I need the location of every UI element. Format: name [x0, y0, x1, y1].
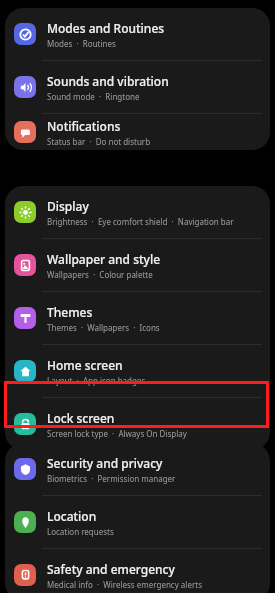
- button[interactable]: Themes: [5, 292, 270, 344]
- staticText: Modes and Routines: [47, 20, 165, 36]
- staticText: Safety and emergency: [47, 561, 175, 577]
- staticText: Screen lock type · Always On Display: [47, 428, 187, 439]
- staticText: Brightness · Eye comfort shield · Naviga…: [47, 216, 234, 227]
- button[interactable]: Wallpaper and style: [5, 239, 270, 291]
- button[interactable]: Sounds and vibration: [5, 61, 270, 113]
- button[interactable]: Lock screen: [5, 398, 270, 450]
- staticText: Notifications: [47, 118, 121, 134]
- button[interactable]: Home screen: [5, 345, 270, 397]
- button[interactable]: Notifications: [5, 114, 270, 150]
- staticText: Home screen: [47, 357, 123, 373]
- staticText: Medical info · Wireless emergency alerts: [47, 579, 202, 590]
- button[interactable]: Safety and emergency: [5, 549, 270, 593]
- staticText: Settings: [14, 9, 84, 32]
- staticText: Sound mode · Ringtone: [47, 91, 140, 102]
- staticText: Display: [47, 198, 89, 214]
- staticText: Biometrics · Permission manager: [47, 473, 176, 484]
- staticText: Layout · App icon badges: [47, 375, 146, 386]
- staticText: Wallpaper and style: [47, 251, 161, 267]
- staticText: Wallpapers · Colour palette: [47, 269, 153, 280]
- button[interactable]: Modes and Routines: [5, 8, 270, 60]
- button[interactable]: Security and privacy: [5, 443, 270, 495]
- button[interactable]: Display: [5, 186, 270, 238]
- staticText: Lock screen: [47, 410, 115, 426]
- staticText: Modes · Routines: [47, 38, 116, 49]
- staticText: Themes · Wallpapers · Icons: [47, 322, 160, 333]
- staticText: Themes: [47, 304, 93, 320]
- staticText: Security and privacy: [47, 455, 163, 471]
- button[interactable]: Location: [5, 496, 270, 548]
- staticText: Location: [47, 508, 97, 524]
- staticText: Sounds and vibration: [47, 73, 169, 89]
- staticText: Status bar · Do not disturb: [47, 136, 151, 147]
- staticText: Location requests: [47, 526, 114, 537]
- button[interactable]: Search: [243, 7, 267, 31]
